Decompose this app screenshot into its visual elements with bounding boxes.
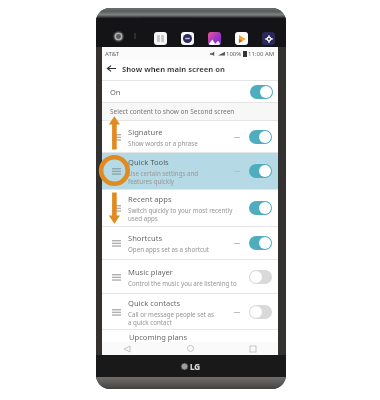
button[interactable]: On [249,164,272,178]
staticText: Upcoming plans [129,332,188,342]
staticText: Shortcuts [128,233,163,243]
staticText: On [110,87,121,97]
staticText: Recent apps [128,194,172,204]
staticText: 100% [226,50,242,58]
staticText: Show words or a phrase [128,139,198,147]
button[interactable]: Off [249,270,272,284]
staticText: LG [190,361,201,372]
button[interactable]: Gallery [208,32,221,45]
button[interactable]: Signature [102,121,278,152]
staticText: Control the music you are listening to [128,279,237,287]
staticText: 11:00 AM [248,50,275,58]
staticText: Quick contacts [128,298,181,308]
button[interactable]: On [102,81,278,102]
button[interactable]: Recent apps [102,190,278,226]
staticText: Switch quickly to your most recently use… [128,206,233,222]
button[interactable]: Back [120,342,134,355]
staticText: Call or message people set as a quick co… [128,310,214,326]
button[interactable]: Quick contacts [102,294,278,329]
button[interactable]: Notes [154,32,167,45]
staticText: Music player [128,267,173,277]
staticText: AT&T [105,50,119,58]
button[interactable]: Camera [181,32,194,45]
button[interactable]: Home [183,342,197,355]
button[interactable]: Quick Tools [102,153,278,189]
button[interactable]: On [249,236,272,250]
staticText: Select content to show on Second screen [110,107,235,116]
staticText: Open apps set as a shortcut [128,245,209,253]
staticText: Quick Tools [128,157,169,167]
staticText: Use certain settings and features quickl… [128,169,199,185]
button[interactable]: Off [249,305,272,319]
button[interactable]: Shortcuts [102,227,278,259]
button[interactable]: Play Store [235,32,248,45]
button[interactable]: Recent apps [246,342,260,355]
button[interactable]: Back [105,62,118,75]
button[interactable]: On [249,130,272,144]
button[interactable]: Music player [102,260,278,293]
button[interactable]: On [250,85,273,99]
staticText: Signature [128,127,163,137]
button[interactable]: Settings [262,32,275,45]
staticText: Show when main screen on [122,64,225,74]
button[interactable]: Upcoming plans [102,330,278,344]
button[interactable]: On [249,201,272,215]
